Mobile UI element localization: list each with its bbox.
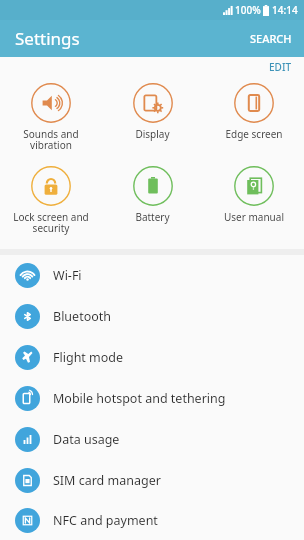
staticText: NFC and payment — [53, 512, 158, 529]
staticText: Sounds and vibration — [23, 127, 79, 152]
button[interactable]: User manual — [203, 164, 304, 226]
staticText: Edge screen — [225, 127, 283, 141]
button[interactable]: Wi-Fi — [0, 255, 304, 296]
button[interactable]: Lock screen and security — [0, 164, 102, 237]
button[interactable]: Flight mode — [0, 337, 304, 378]
staticText: 100% — [235, 3, 261, 17]
button[interactable]: Bluetooth — [0, 296, 304, 337]
staticText: Battery — [135, 210, 170, 224]
button[interactable]: Data usage — [0, 419, 304, 460]
staticText: Settings — [15, 27, 80, 50]
staticText: SIM card manager — [53, 472, 161, 489]
button[interactable]: Mobile hotspot and tethering — [0, 378, 304, 419]
staticText: 14:14 — [272, 3, 298, 17]
staticText: Bluetooth — [53, 308, 112, 325]
button[interactable]: SIM card manager — [0, 460, 304, 501]
staticText: SEARCH — [250, 31, 292, 46]
button[interactable]: Display — [102, 81, 203, 143]
staticText: Mobile hotspot and tethering — [53, 390, 226, 407]
staticText: Data usage — [53, 431, 120, 448]
button[interactable]: EDIT — [257, 57, 304, 77]
staticText: EDIT — [269, 60, 292, 74]
button[interactable]: Edge screen — [203, 81, 304, 143]
staticText: Display — [135, 127, 170, 141]
staticText: Wi-Fi — [53, 267, 82, 284]
staticText: User manual — [224, 210, 284, 224]
button[interactable]: Battery — [102, 164, 203, 226]
button[interactable]: SEARCH — [238, 25, 304, 52]
staticText: Lock screen and security — [13, 210, 89, 235]
staticText: Flight mode — [53, 349, 124, 366]
button[interactable]: Sounds and vibration — [0, 81, 102, 154]
button[interactable]: NFC and payment — [0, 501, 304, 540]
